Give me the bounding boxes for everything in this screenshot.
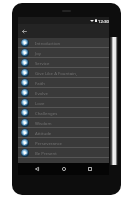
button[interactable]: Evolve (18, 88, 109, 97)
button[interactable]: Wisdom (18, 118, 109, 127)
staticText: Introduction (35, 40, 61, 46)
button[interactable]: Be Present (18, 148, 109, 157)
button[interactable]: Attitude (18, 128, 109, 137)
button[interactable]: Faith (18, 78, 109, 87)
staticText: Service (35, 60, 50, 66)
button[interactable]: Navigate up (19, 26, 30, 37)
staticText: Love (35, 100, 45, 106)
button[interactable]: Joy (18, 48, 109, 57)
staticText: Give Like A Fountain, (35, 70, 78, 76)
staticText: 12:30 (98, 18, 109, 24)
button[interactable]: Challenges (18, 108, 109, 117)
staticText: Faith (35, 80, 45, 86)
button[interactable]: Home (57, 163, 71, 175)
staticText: Wisdom (35, 120, 52, 126)
staticText: Attitude (35, 130, 52, 136)
staticText: Challenges (35, 110, 58, 116)
button[interactable]: Give Like A Fountain, (18, 68, 109, 77)
staticText: Joy (35, 50, 41, 56)
button[interactable]: Back (30, 163, 44, 175)
button[interactable]: Recent apps (83, 163, 97, 175)
staticText: Be Present (35, 150, 57, 156)
staticText: Evolve (35, 90, 48, 96)
staticText: Perseverance (35, 140, 63, 146)
button[interactable]: Service (18, 58, 109, 67)
button[interactable]: Introduction (18, 38, 109, 47)
button[interactable]: Perseverance (18, 138, 109, 147)
button[interactable]: Love (18, 98, 109, 107)
